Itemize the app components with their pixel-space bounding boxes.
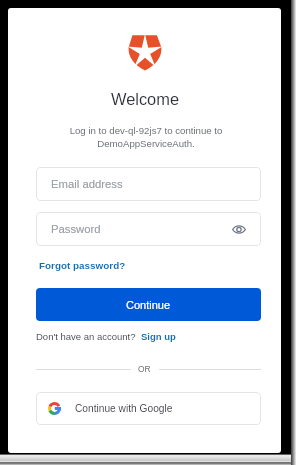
staticText: Log in to dev-ql-92js7 to continue to: [31, 125, 261, 136]
staticText: Email address: [51, 178, 123, 191]
staticText: OR: [138, 364, 151, 373]
button[interactable]: Sign up: [140, 331, 177, 342]
staticText: Sign up: [141, 331, 176, 342]
staticText: Password: [51, 223, 101, 236]
button[interactable]: Password: [36, 212, 261, 246]
staticText: Welcome: [45, 90, 245, 108]
button[interactable]: Show password: [230, 220, 248, 238]
button[interactable]: Email address: [36, 167, 261, 201]
button[interactable]: Continue with Google: [36, 392, 261, 425]
staticText: Continue: [126, 299, 171, 311]
staticText: Don't have an account?: [36, 331, 136, 342]
staticText: Forgot password?: [39, 260, 126, 271]
staticText: DemoAppServiceAuth.: [31, 138, 261, 149]
staticText: Continue with Google: [75, 403, 173, 414]
button[interactable]: Forgot password?: [36, 258, 129, 273]
button[interactable]: Continue: [36, 288, 261, 321]
